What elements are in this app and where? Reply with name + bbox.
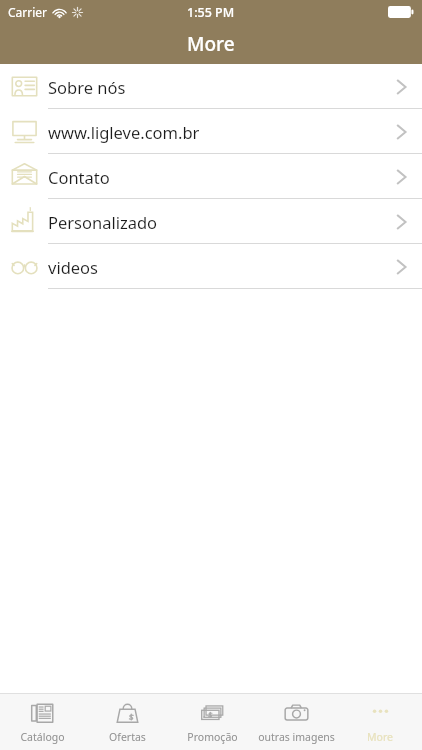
staticText: Personalizado	[48, 211, 397, 233]
button[interactable]: Contato	[0, 154, 422, 199]
staticText: Carrier	[8, 4, 48, 20]
button[interactable]: Promoção	[170, 694, 254, 750]
staticText: More	[367, 730, 393, 744]
staticText: Ofertas	[109, 730, 146, 744]
staticText: 1:55 PM	[187, 4, 235, 21]
button[interactable]: Catálogo	[0, 694, 85, 750]
staticText: outras imagens	[258, 730, 335, 744]
staticText: More	[187, 31, 235, 57]
staticText: videos	[48, 256, 397, 278]
button[interactable]: Ofertas	[85, 694, 170, 750]
staticText: Catálogo	[20, 730, 65, 744]
staticText: www.ligleve.com.br	[48, 121, 397, 143]
button[interactable]: www.ligleve.com.br	[0, 109, 422, 154]
staticText: Promoção	[187, 730, 238, 744]
button[interactable]: videos	[0, 244, 422, 289]
button[interactable]: Personalizado	[0, 199, 422, 244]
button[interactable]: Sobre nós	[0, 64, 422, 109]
button[interactable]: More	[338, 694, 422, 750]
staticText: Sobre nós	[48, 76, 397, 98]
staticText: Contato	[48, 166, 397, 188]
button[interactable]: outras imagens	[254, 694, 338, 750]
